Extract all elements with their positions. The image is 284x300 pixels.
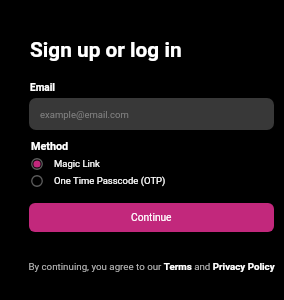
button[interactable]: example@email.com (29, 98, 274, 130)
staticText: Method (31, 140, 69, 153)
other: One Time Passcode (OTP) (29, 173, 45, 189)
staticText: Sign up or log in (30, 38, 182, 62)
staticText: Continue (131, 212, 172, 224)
button[interactable]: One Time Passcode (OTP) (29, 172, 274, 189)
button[interactable]: Magic Link, selected (29, 155, 274, 172)
button[interactable]: By continuing, you agree to our Terms an… (27, 261, 276, 272)
staticText: One Time Passcode (OTP) (54, 175, 166, 186)
staticText: Magic Link (54, 158, 100, 169)
staticText: example@email.com (40, 109, 129, 120)
other: Magic Link, selected (29, 156, 45, 172)
staticText: Email (30, 82, 55, 94)
button[interactable]: Continue (29, 203, 274, 232)
